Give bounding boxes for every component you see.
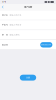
button[interactable]: Back	[1, 4, 6, 10]
staticText: 请输入手机号	[9, 24, 21, 26]
staticText: 密 码	[2, 34, 8, 36]
button[interactable]: 获取验证码	[40, 42, 52, 47]
button[interactable]: 密 码	[0, 30, 56, 40]
staticText: 请输入用户名	[9, 14, 21, 16]
staticText: 9:41	[2, 1, 6, 3]
staticText: 用户名	[2, 14, 8, 16]
staticText: 注册	[26, 76, 30, 79]
button[interactable]: 注册	[20, 75, 36, 81]
button[interactable]: 手机号	[0, 20, 56, 30]
staticText: 获取验证码	[41, 44, 51, 46]
staticText: 验证码	[2, 44, 8, 46]
button[interactable]: 用户名	[0, 10, 56, 20]
staticText: 手机号	[2, 24, 8, 26]
staticText: 用户注册	[24, 6, 32, 8]
staticText: 请输入密码	[9, 34, 19, 36]
